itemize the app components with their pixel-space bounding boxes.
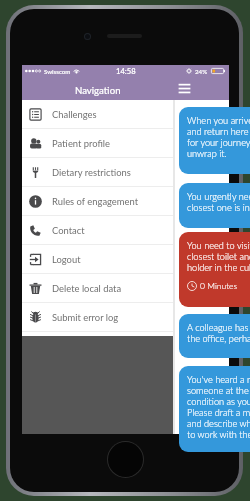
button[interactable]: Rules of engagement [22, 187, 173, 216]
staticText: A colleague has just left [187, 322, 250, 333]
staticText: When you arrive at the [187, 115, 250, 126]
staticText: 0 Minutes [200, 281, 238, 291]
staticText: Rules of engagement [52, 196, 139, 207]
staticText: and return here to find [187, 126, 250, 137]
staticText: 24% [195, 68, 208, 75]
staticText: Submit error log [52, 312, 119, 323]
staticText: Swisscom [44, 68, 71, 75]
staticText: unwrap it. [187, 148, 227, 159]
staticText: You urgently need to find [187, 191, 250, 202]
button[interactable]: Submit error log [22, 303, 173, 332]
button[interactable]: You need to visit the [179, 232, 250, 307]
button[interactable]: You urgently need to find [179, 183, 250, 228]
staticText: closest one is in the [187, 202, 250, 213]
button[interactable]: When you arrive at the [179, 107, 250, 174]
staticText: Please draft a message [187, 407, 250, 418]
button[interactable]: Contact [22, 216, 173, 245]
button[interactable]: Challenges [22, 100, 173, 129]
staticText: You need to visit the [187, 240, 250, 251]
staticText: holder in the cubicle. [187, 262, 250, 273]
staticText: Contact [52, 225, 85, 236]
staticText: Delete local data [52, 283, 122, 294]
staticText: You've heard a rumour that [187, 374, 250, 385]
button[interactable]: A colleague has just left [179, 314, 250, 358]
button[interactable]: Patient profile [22, 129, 173, 158]
staticText: Logout [52, 254, 81, 265]
staticText: Challenges [52, 109, 97, 120]
staticText: closest toilet and the [187, 251, 250, 262]
staticText: for your journey. Do not [187, 137, 250, 148]
staticText: the office, perhaps you [187, 333, 250, 344]
staticText: to work with them on [187, 429, 250, 440]
staticText: Patient profile [52, 138, 111, 149]
staticText: someone at the office has [187, 385, 250, 396]
staticText: and describe what it is [187, 418, 250, 429]
button[interactable]: Open navigation menu [173, 81, 193, 98]
staticText: 14:58 [116, 66, 136, 75]
button[interactable]: You've heard a rumour that [179, 366, 250, 452]
staticText: Navigation [75, 85, 121, 97]
staticText: Dietary restrictions [52, 167, 131, 178]
button[interactable]: Delete local data [22, 274, 173, 303]
button[interactable]: Dietary restrictions [22, 158, 173, 187]
staticText: condition as you. Please [187, 396, 250, 407]
button[interactable]: Logout [22, 245, 173, 274]
